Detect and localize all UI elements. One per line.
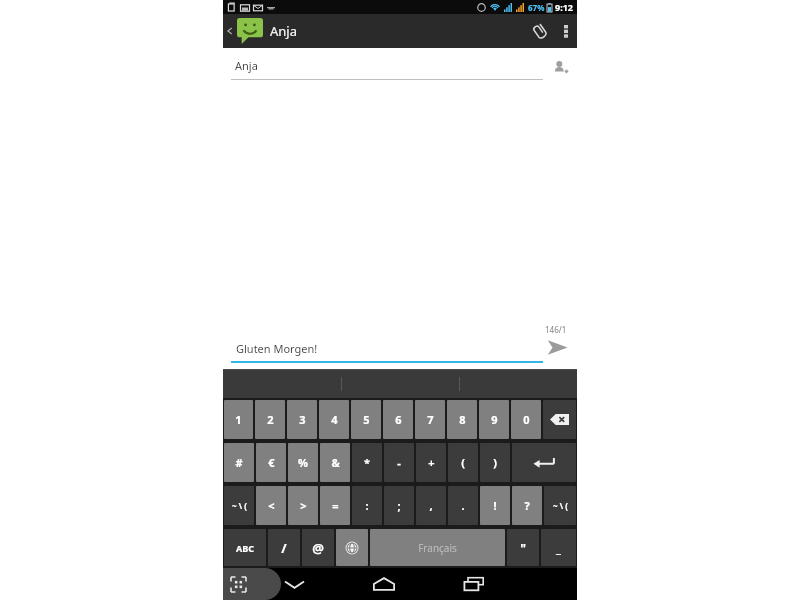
staticText: 1 <box>235 412 242 427</box>
button[interactable]: Gluten Morgen! <box>231 337 543 363</box>
button[interactable]: Add recipient <box>543 50 577 84</box>
staticText: 8 <box>459 412 466 427</box>
staticText: @ <box>312 539 324 557</box>
button[interactable]: 8 <box>447 400 477 439</box>
staticText: 6 <box>395 412 402 427</box>
button[interactable]: 3 <box>287 400 317 439</box>
button[interactable]: Change language <box>336 529 368 566</box>
staticText: Gluten Morgen! <box>236 341 318 356</box>
staticText: - <box>397 455 401 470</box>
staticText: # <box>235 455 243 470</box>
staticText: . <box>461 498 465 513</box>
button[interactable]: 2 <box>255 400 285 439</box>
staticText: " <box>520 540 526 556</box>
staticText: 4 <box>331 412 338 427</box>
button[interactable]: ( <box>448 443 478 482</box>
button[interactable]: . <box>448 486 478 525</box>
staticText: 3 <box>299 412 306 427</box>
staticText: = <box>332 498 339 513</box>
button[interactable]: < <box>256 486 286 525</box>
staticText: + <box>428 455 435 470</box>
button[interactable]: Switch input method <box>223 568 281 600</box>
button[interactable]: * <box>352 443 382 482</box>
staticText: ~ \ ( <box>232 500 247 511</box>
button[interactable]: Recent apps <box>429 568 519 600</box>
staticText: 5 <box>363 412 370 427</box>
button[interactable]: 4 <box>319 400 349 439</box>
button[interactable]: + <box>416 443 446 482</box>
staticText: Anja <box>235 58 258 73</box>
staticText: € <box>268 455 275 470</box>
button[interactable]: 1 <box>224 400 253 439</box>
button[interactable]: Attach <box>521 14 555 48</box>
button[interactable]: Home <box>339 568 429 600</box>
staticText: < <box>268 498 275 513</box>
button[interactable]: More options <box>555 14 577 48</box>
staticText: ? <box>524 498 530 513</box>
button[interactable]: Up, Anja <box>223 14 303 48</box>
button[interactable]: 6 <box>383 400 413 439</box>
staticText: Français <box>418 541 457 555</box>
button[interactable]: Send <box>537 327 577 367</box>
button[interactable]: 9 <box>479 400 509 439</box>
button[interactable]: / <box>268 529 300 566</box>
staticText: _ <box>556 540 561 556</box>
button[interactable]: € <box>256 443 286 482</box>
staticText: / <box>281 539 287 557</box>
staticText: 67% <box>528 2 545 13</box>
button[interactable]: ! <box>480 486 510 525</box>
staticText: 7 <box>427 412 434 427</box>
button[interactable]: = <box>320 486 350 525</box>
staticText: * <box>364 455 370 470</box>
button[interactable]: # <box>224 443 254 482</box>
button[interactable]: : <box>352 486 382 525</box>
button[interactable]: " <box>507 529 539 566</box>
button[interactable]: ; <box>384 486 414 525</box>
button[interactable]: ) <box>480 443 510 482</box>
staticText: ~ \ ( <box>553 500 568 511</box>
staticText: 9 <box>491 412 498 427</box>
staticText: & <box>331 455 340 470</box>
staticText: , <box>429 498 433 513</box>
button[interactable]: - <box>384 443 414 482</box>
staticText: 0 <box>523 412 530 427</box>
staticText: 2 <box>267 412 274 427</box>
staticText: ) <box>493 455 497 470</box>
button[interactable]: Anja <box>231 54 543 80</box>
button[interactable]: 7 <box>415 400 445 439</box>
button[interactable]: 5 <box>351 400 381 439</box>
button[interactable]: Hide keyboard <box>250 568 339 600</box>
button[interactable]: , <box>416 486 446 525</box>
staticText: > <box>300 498 307 513</box>
button[interactable]: Français <box>370 529 505 566</box>
staticText: ABC <box>236 542 254 554</box>
button[interactable]: & <box>320 443 350 482</box>
button[interactable]: % <box>288 443 318 482</box>
button[interactable]: _ <box>541 529 576 566</box>
button[interactable]: Backspace <box>543 400 576 439</box>
staticText: ; <box>397 498 401 513</box>
staticText: % <box>298 455 308 470</box>
staticText: 9:12 <box>555 1 573 13</box>
staticText: : <box>365 498 369 513</box>
staticText: ! <box>493 498 497 513</box>
button[interactable]: ~ \ ( <box>544 486 576 525</box>
button[interactable]: ? <box>512 486 542 525</box>
staticText: 146/1 <box>545 324 567 335</box>
button[interactable]: > <box>288 486 318 525</box>
button[interactable]: @ <box>302 529 334 566</box>
button[interactable]: Enter <box>512 443 576 482</box>
button[interactable]: ~ \ ( <box>224 486 254 525</box>
button[interactable]: 0 <box>511 400 541 439</box>
button[interactable]: ABC <box>224 529 266 566</box>
staticText: ( <box>461 455 465 470</box>
staticText: Anja <box>270 22 297 40</box>
